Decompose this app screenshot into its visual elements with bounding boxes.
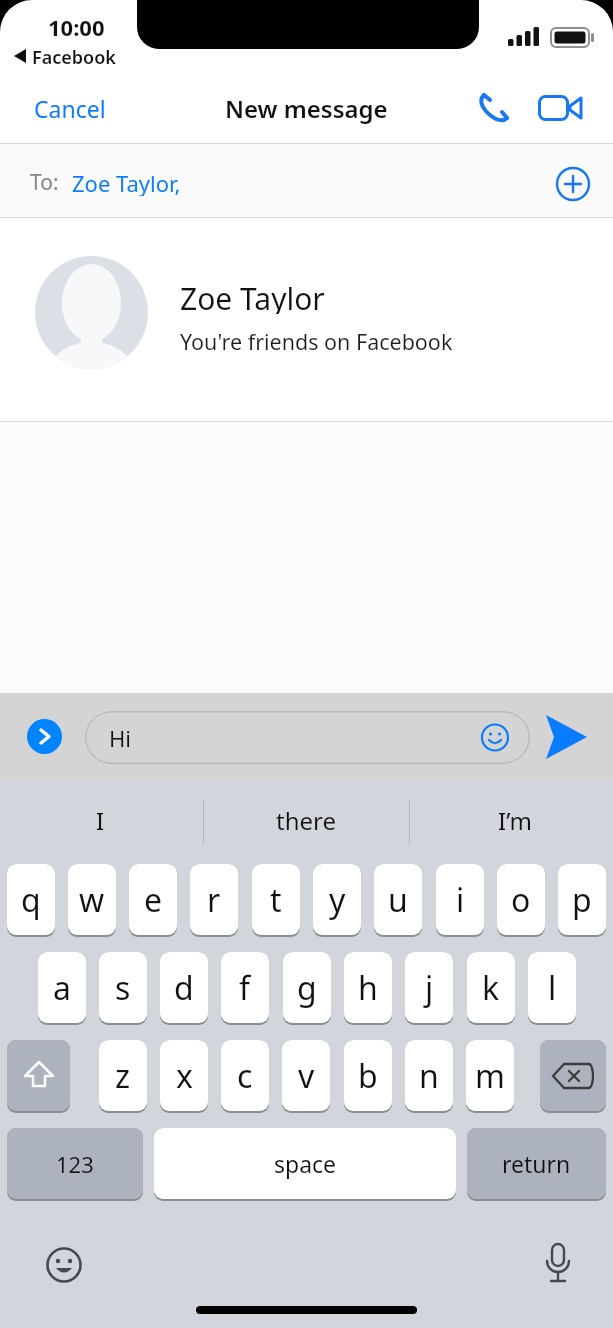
staticText: e [144, 878, 163, 922]
button[interactable]: q [7, 864, 55, 937]
button[interactable] [27, 719, 62, 754]
staticText: x [176, 1054, 193, 1098]
staticText: You're friends on Facebook [180, 327, 453, 356]
button[interactable]: s [99, 952, 147, 1025]
staticText: Facebook [32, 45, 116, 67]
button[interactable]: j [405, 952, 453, 1025]
button[interactable]: n [405, 1040, 453, 1113]
button[interactable]: there [246, 800, 366, 840]
button[interactable]: Zoe Taylor [0, 218, 613, 422]
button[interactable]: Hi [85, 711, 530, 764]
staticText: o [511, 878, 531, 922]
button[interactable]: t [252, 864, 300, 937]
button[interactable]: a [38, 952, 86, 1025]
staticText: Cancel [34, 93, 106, 124]
staticText: v [298, 1054, 315, 1098]
button[interactable] [540, 713, 590, 761]
button[interactable]: r [190, 864, 238, 937]
staticText: z [115, 1054, 131, 1098]
button[interactable] [472, 86, 516, 130]
button[interactable]: x [160, 1040, 208, 1113]
staticText: c [237, 1054, 253, 1098]
staticText: y [329, 878, 346, 922]
button[interactable]: To: [0, 144, 613, 218]
button[interactable]: space [154, 1128, 456, 1201]
staticText: u [388, 878, 408, 922]
staticText: return [502, 1148, 571, 1179]
button[interactable] [538, 1241, 578, 1289]
button[interactable]: return [467, 1128, 606, 1201]
button[interactable]: v [282, 1040, 330, 1113]
staticText: q [21, 878, 41, 922]
staticText: l [548, 966, 557, 1010]
button[interactable] [44, 1245, 84, 1285]
staticText: t [270, 878, 282, 922]
button[interactable] [540, 1040, 606, 1113]
button[interactable]: z [99, 1040, 147, 1113]
button[interactable]: Facebook [32, 45, 152, 67]
button[interactable]: I’m [465, 800, 565, 840]
staticText: r [207, 878, 221, 922]
staticText: s [115, 966, 131, 1010]
staticText: i [456, 878, 465, 922]
button[interactable]: d [160, 952, 208, 1025]
button[interactable]: g [283, 952, 331, 1025]
staticText: Hi [109, 723, 131, 753]
staticText: h [358, 966, 378, 1010]
button[interactable] [535, 86, 587, 130]
staticText: 123 [56, 1149, 94, 1179]
staticText: n [419, 1054, 439, 1098]
staticText: I [96, 804, 105, 837]
button[interactable]: o [497, 864, 545, 937]
staticText: d [174, 966, 194, 1010]
staticText: m [475, 1054, 505, 1098]
button[interactable]: b [344, 1040, 392, 1113]
staticText: New message [225, 92, 388, 125]
button[interactable] [7, 1040, 70, 1113]
staticText: space [274, 1148, 337, 1179]
button[interactable]: h [344, 952, 392, 1025]
button[interactable] [555, 166, 591, 202]
button[interactable]: I [60, 800, 140, 840]
staticText: Zoe Taylor, [72, 168, 181, 196]
staticText: j [425, 966, 434, 1010]
button[interactable]: 123 [7, 1128, 143, 1201]
staticText: f [239, 966, 251, 1010]
staticText: there [276, 804, 336, 837]
staticText: 10:00 [48, 12, 105, 42]
button[interactable]: k [467, 952, 515, 1025]
button[interactable]: e [129, 864, 177, 937]
staticText: p [572, 878, 592, 922]
button[interactable]: y [313, 864, 361, 937]
button[interactable]: Cancel [20, 91, 120, 125]
staticText: k [482, 966, 500, 1010]
button[interactable]: u [374, 864, 422, 937]
staticText: To: [30, 168, 59, 196]
button[interactable]: f [221, 952, 269, 1025]
button[interactable]: m [466, 1040, 514, 1113]
button[interactable]: l [528, 952, 576, 1025]
button[interactable]: w [68, 864, 116, 937]
staticText: g [297, 966, 317, 1010]
staticText: b [358, 1054, 378, 1098]
staticText: w [79, 878, 105, 922]
button[interactable]: p [558, 864, 606, 937]
button[interactable]: i [436, 864, 484, 937]
staticText: Zoe Taylor [180, 278, 325, 314]
staticText: a [53, 966, 71, 1010]
staticText: I’m [498, 804, 533, 837]
button[interactable]: c [221, 1040, 269, 1113]
